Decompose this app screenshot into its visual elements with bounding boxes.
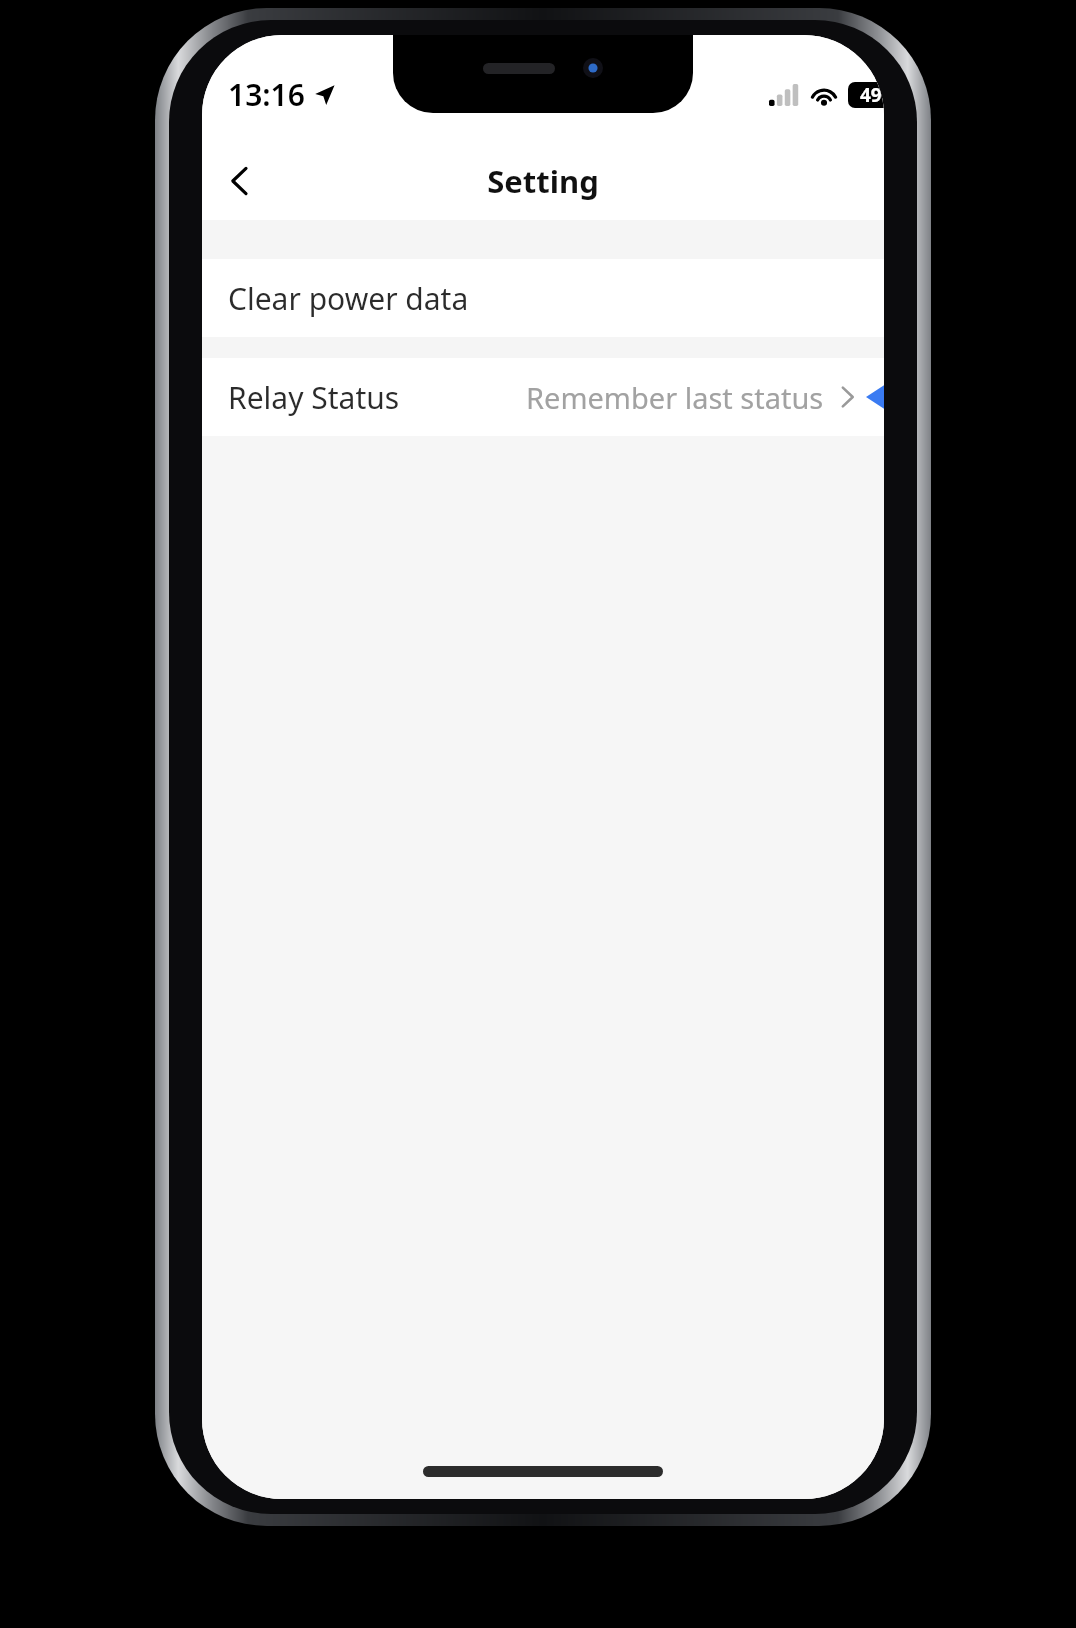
button[interactable]: Clear power data: [202, 259, 884, 337]
button[interactable]: Back: [202, 143, 278, 219]
staticText: Clear power data: [228, 278, 469, 319]
staticText: Remember last status: [526, 378, 824, 417]
staticText: Relay Status: [228, 377, 400, 418]
staticText: Setting: [487, 160, 599, 202]
button[interactable]: Relay Status: [202, 358, 884, 436]
staticText: 49: [860, 82, 882, 108]
staticText: 13:16: [228, 74, 305, 115]
